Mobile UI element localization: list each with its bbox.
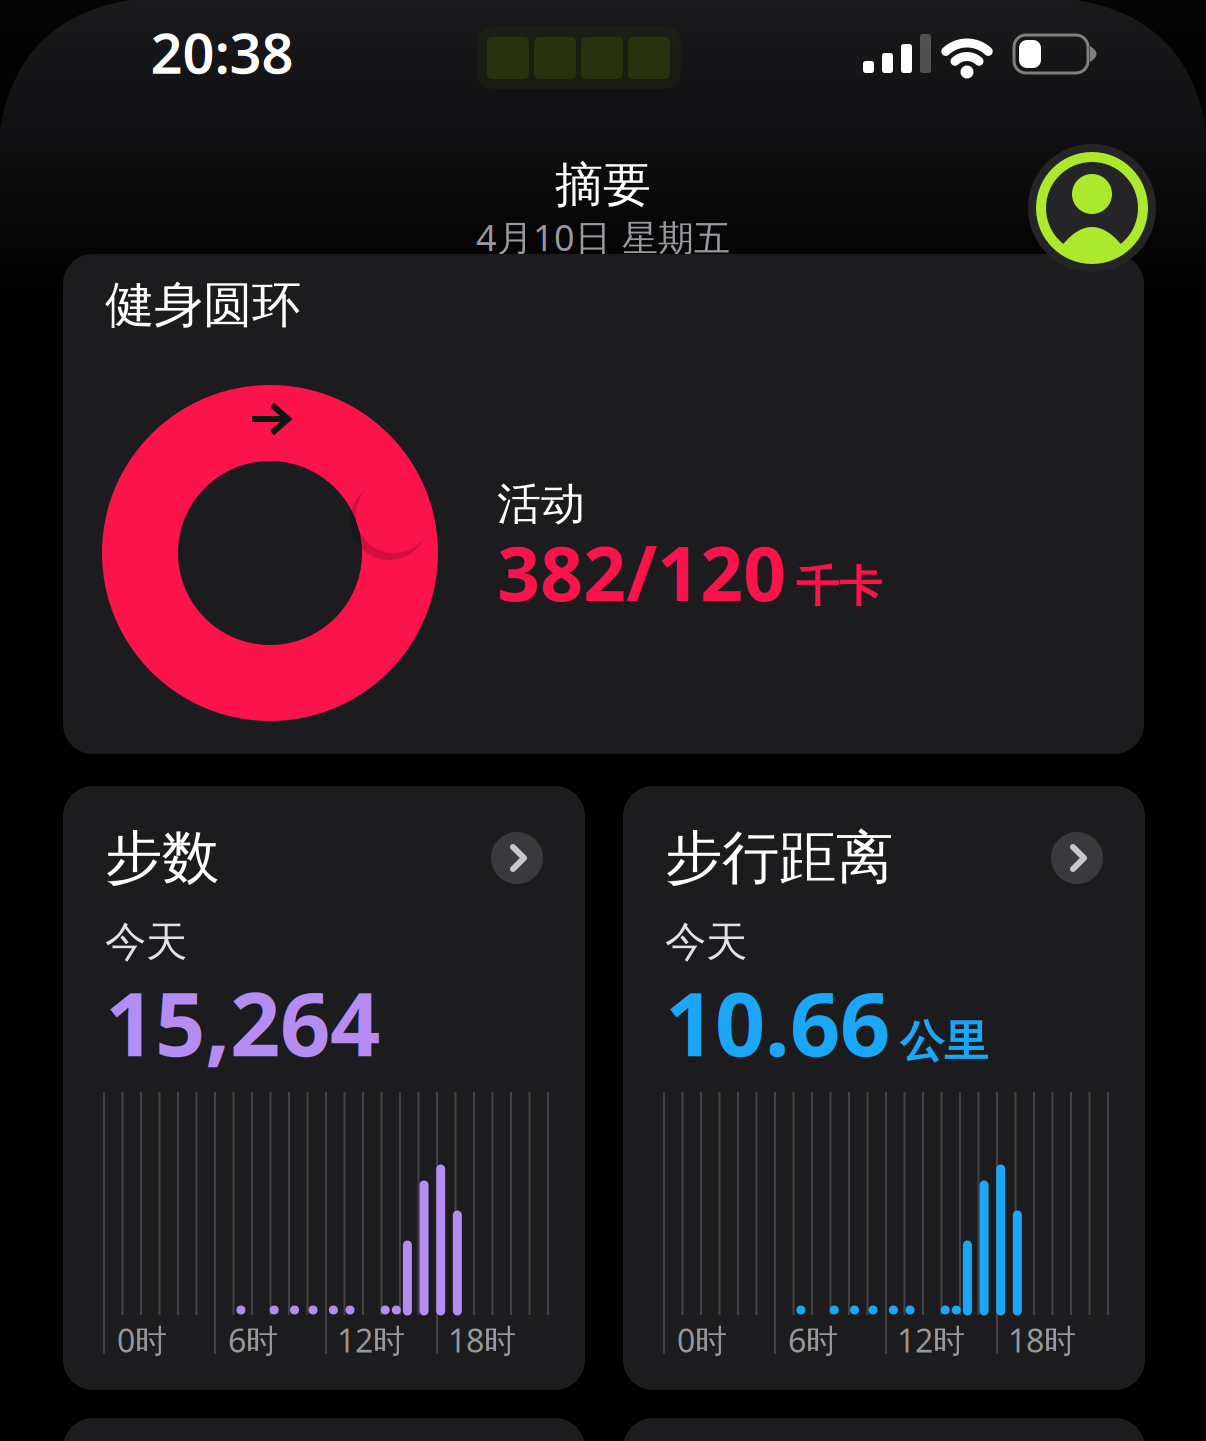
staticText: 步行距离	[665, 823, 893, 893]
staticText: 0时	[677, 1319, 727, 1361]
staticText: 12时	[337, 1319, 405, 1361]
staticText: 摘要	[555, 155, 651, 214]
staticText: 18时	[448, 1319, 516, 1361]
staticText: 382/120	[497, 522, 786, 622]
staticText: 10.66	[665, 964, 890, 1080]
button[interactable]: 更多健康数据	[623, 1418, 1145, 1441]
button[interactable]: 健身圆环	[63, 254, 1144, 754]
staticText: 12时	[897, 1319, 965, 1361]
staticText: 步数	[105, 823, 219, 893]
staticText: 18时	[1008, 1319, 1076, 1361]
staticText: 今天	[665, 917, 747, 967]
staticText: 6时	[788, 1319, 838, 1361]
staticText: 千卡	[796, 561, 882, 613]
button[interactable]: 更多健康数据	[63, 1418, 585, 1441]
staticText: 公里	[900, 1014, 988, 1068]
button[interactable]: 个人资料	[1028, 144, 1156, 272]
staticText: 20:38	[150, 15, 293, 89]
staticText: 活动	[497, 477, 585, 531]
staticText: 0时	[117, 1319, 167, 1361]
staticText: 健身圆环	[105, 275, 301, 335]
staticText: 6时	[228, 1319, 278, 1361]
staticText: 15,264	[105, 964, 380, 1080]
staticText: 4月10日 星期五	[476, 213, 730, 261]
staticText: 今天	[105, 917, 187, 967]
button[interactable]: 步行距离	[623, 786, 1145, 1390]
button[interactable]: 步数	[63, 786, 585, 1390]
